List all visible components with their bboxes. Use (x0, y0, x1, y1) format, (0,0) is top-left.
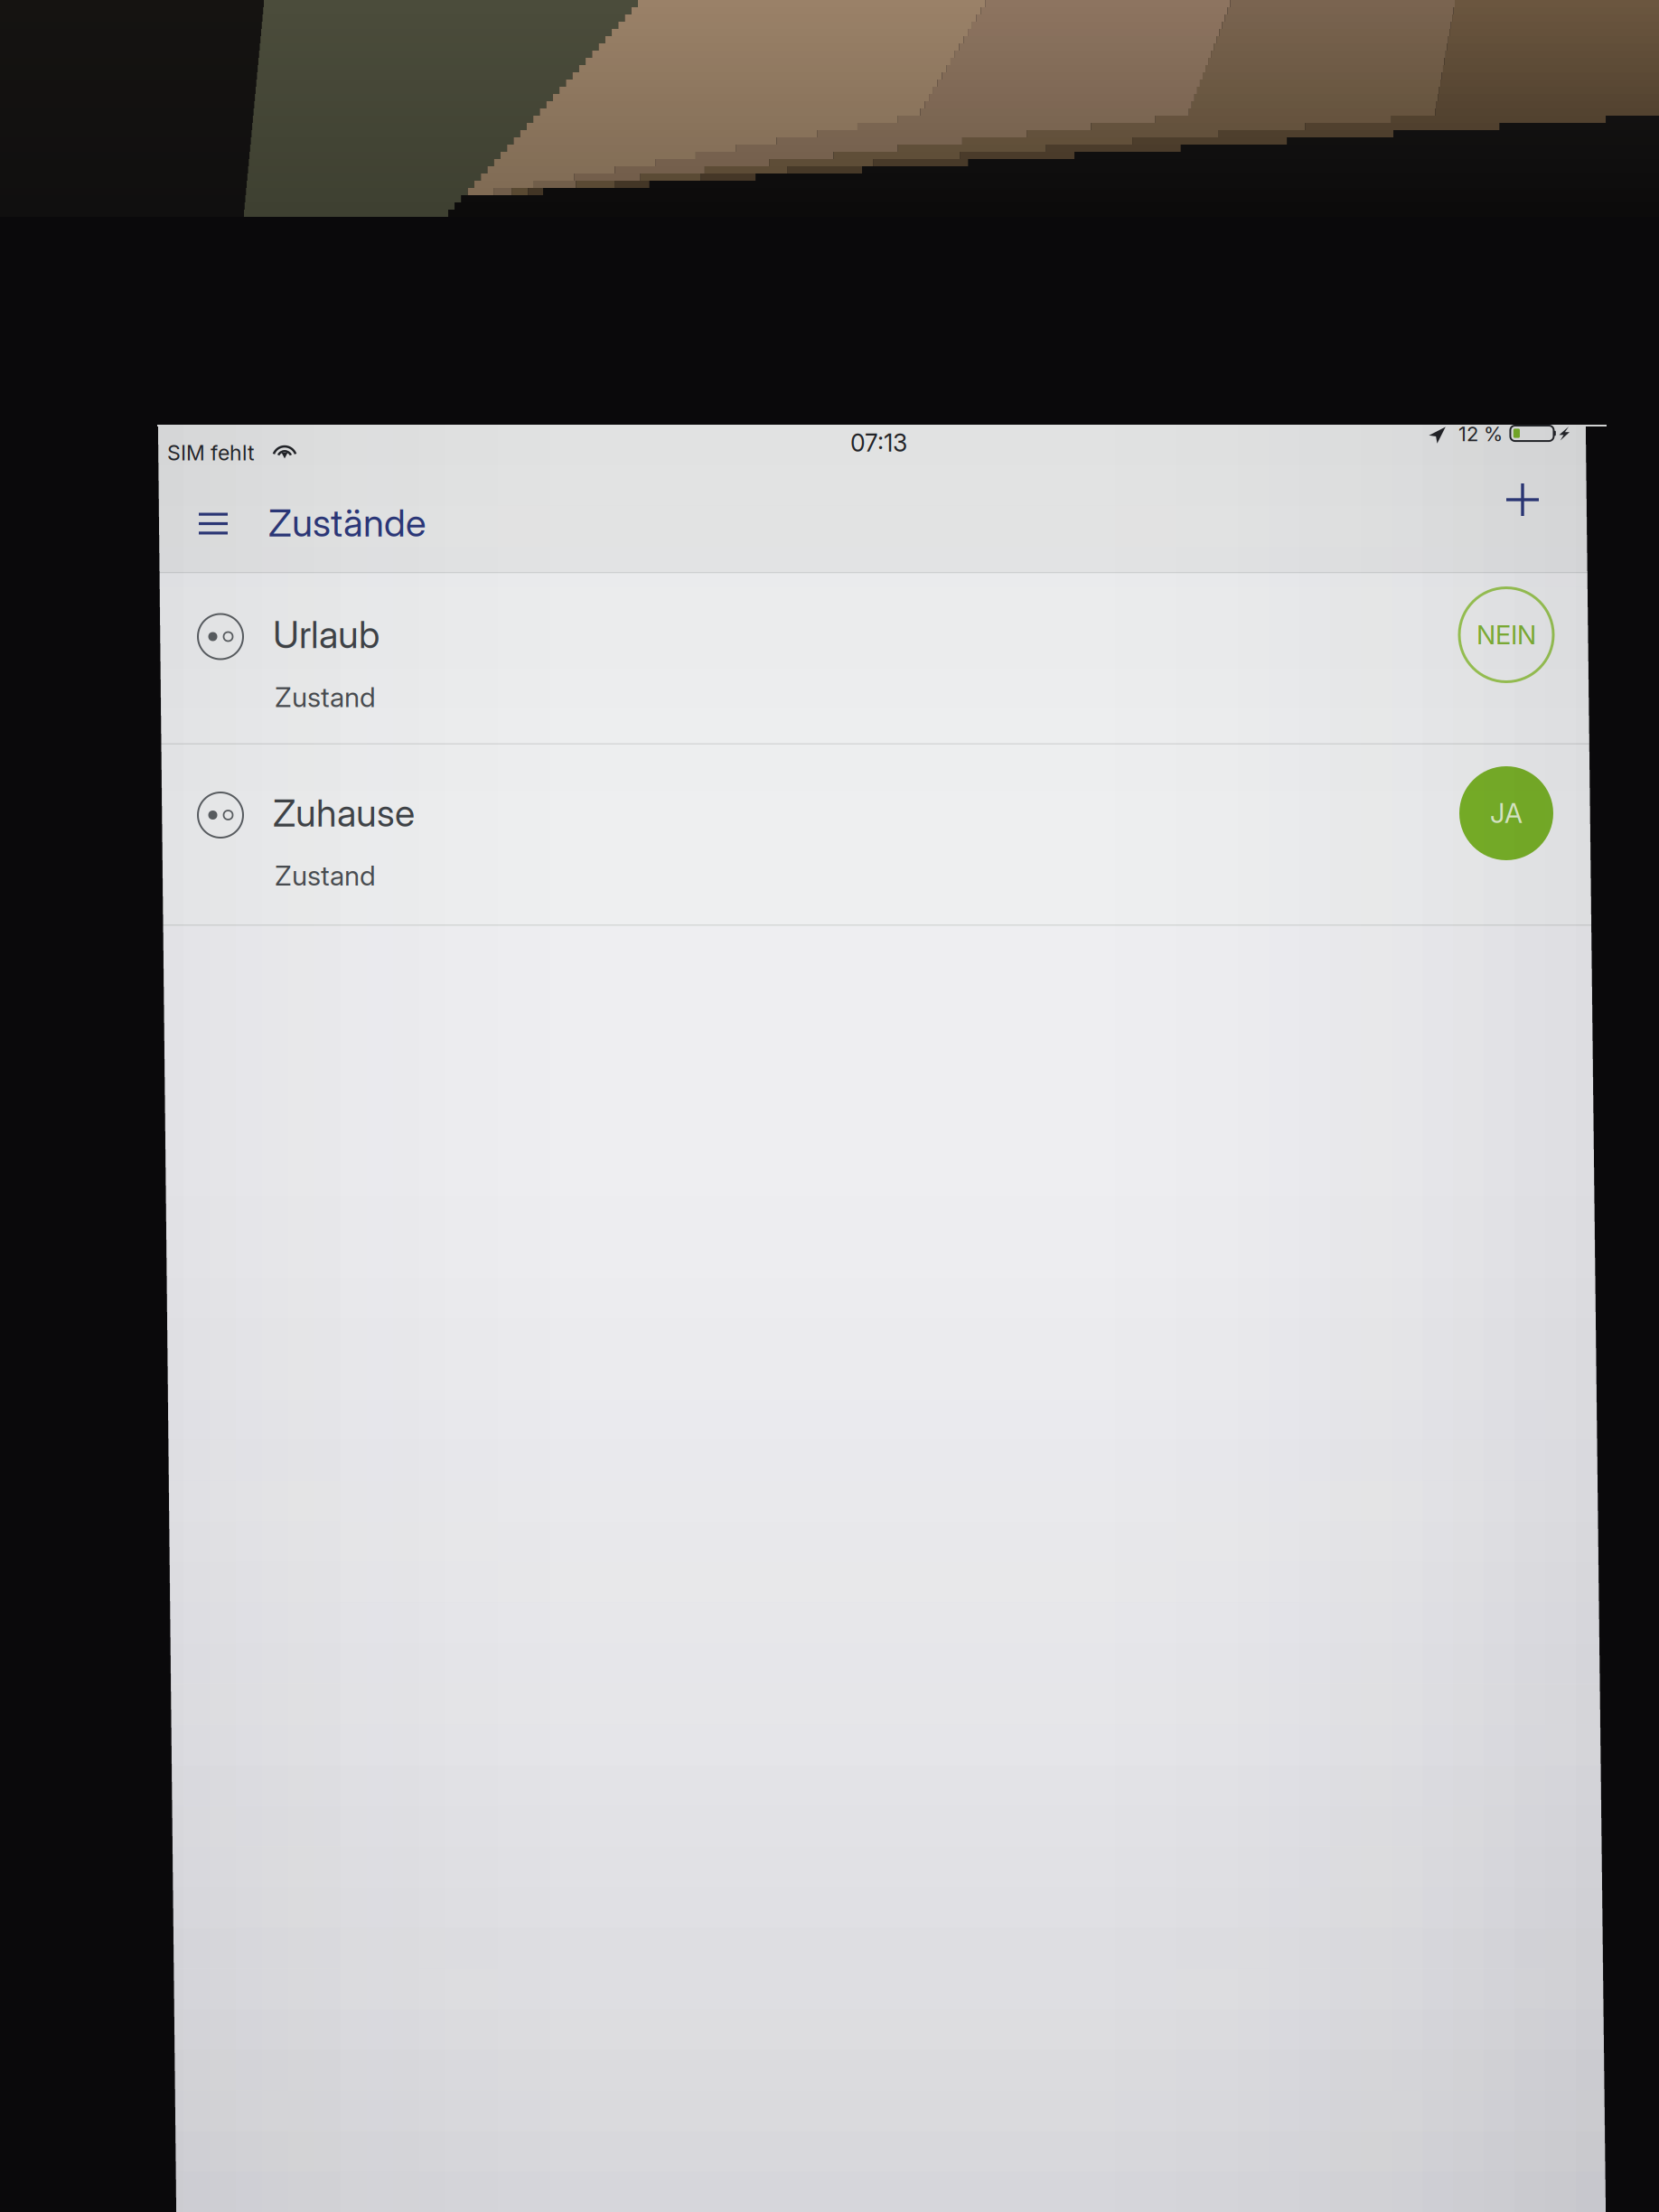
staticText: JA (1490, 797, 1523, 829)
staticText: SIM fehlt (167, 440, 255, 465)
staticText: NEIN (1476, 619, 1536, 651)
button[interactable]: Urlaub (157, 573, 1607, 743)
staticText: 07:13 (850, 428, 907, 457)
staticText: Zuhause (273, 791, 415, 835)
staticText: Zustand (275, 681, 376, 714)
staticText: Zustände (268, 500, 426, 546)
button[interactable]: Zuhause (157, 745, 1607, 924)
staticText: 12 % (1458, 422, 1503, 446)
staticText: Zustand (275, 859, 376, 892)
button[interactable]: Hinzufügen (1479, 456, 1566, 543)
staticText: Urlaub (273, 612, 380, 657)
button[interactable]: Zustände (268, 474, 426, 571)
button[interactable]: Menü (175, 475, 251, 572)
